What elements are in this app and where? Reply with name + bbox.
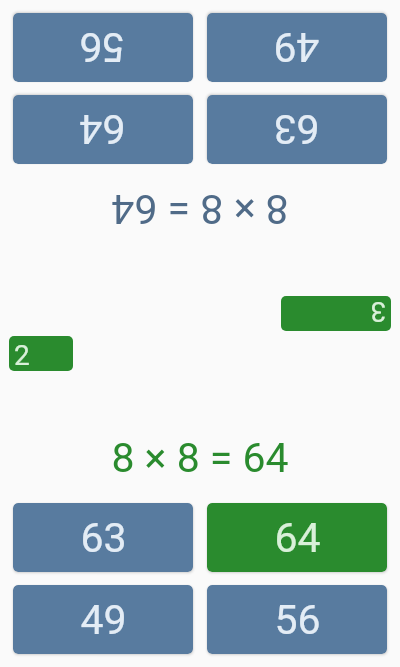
- staticText: 2: [14, 339, 30, 371]
- staticText: 63: [273, 105, 320, 153]
- button[interactable]: 56: [207, 585, 387, 654]
- staticText: 56: [274, 596, 321, 644]
- button[interactable]: 3: [281, 296, 391, 331]
- button[interactable]: 49: [207, 13, 387, 82]
- button[interactable]: 56: [13, 13, 193, 82]
- button[interactable]: 2: [9, 336, 73, 371]
- staticText: 49: [80, 596, 127, 644]
- button[interactable]: 64: [13, 95, 193, 164]
- staticText: 8 × 8 = 64: [0, 434, 400, 482]
- button[interactable]: 63: [207, 95, 387, 164]
- staticText: 64: [274, 514, 321, 562]
- button[interactable]: 64: [207, 503, 387, 572]
- button[interactable]: 49: [13, 585, 193, 654]
- staticText: 56: [79, 23, 126, 71]
- staticText: 49: [273, 23, 320, 71]
- staticText: 63: [80, 514, 127, 562]
- staticText: 64: [79, 105, 126, 153]
- staticText: 8 × 8 = 64: [0, 185, 400, 233]
- staticText: 3: [370, 296, 386, 328]
- button[interactable]: 63: [13, 503, 193, 572]
